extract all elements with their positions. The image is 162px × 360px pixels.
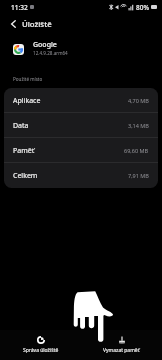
button[interactable]: Data [4, 113, 158, 138]
staticText: 80% [136, 3, 149, 12]
other: Clear memory [118, 336, 126, 344]
staticText: Data [13, 121, 29, 131]
staticText: Úložiště [22, 19, 52, 30]
staticText: Správa úložiště [23, 347, 59, 354]
staticText: 7,91 MB [128, 172, 149, 179]
button[interactable]: Paměť [4, 138, 158, 163]
staticText: 11:32 [11, 3, 28, 12]
staticText: 4,70 MB [128, 97, 149, 104]
button[interactable]: Manage storage [0, 336, 81, 354]
staticText: Celkem [13, 171, 38, 181]
button[interactable]: Clear memory [81, 336, 162, 354]
staticText: Použité místo [13, 76, 43, 82]
staticText: 69,60 MB [124, 147, 149, 154]
staticText: Vymazat paměť [103, 347, 140, 354]
button[interactable]: Aplikace [4, 88, 158, 113]
staticText: Paměť [13, 146, 35, 156]
other: Manage storage [37, 336, 45, 344]
button[interactable]: Celkem [4, 163, 158, 188]
staticText: Aplikace [13, 96, 41, 106]
button[interactable]: Back [5, 16, 21, 32]
staticText: 12.4.9.28.arm64 [33, 50, 68, 56]
staticText: 3,14 MB [128, 122, 149, 129]
staticText: Google [33, 40, 57, 50]
